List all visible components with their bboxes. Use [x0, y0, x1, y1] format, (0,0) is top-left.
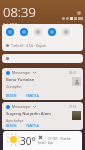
staticText: Sugeng Nurjadin Alam — [6, 111, 52, 117]
button[interactable]: Messenger — [2, 102, 83, 130]
button[interactable]: Quick setting toggle — [62, 28, 70, 36]
button[interactable]: Quick setting toggle — [6, 28, 14, 36]
staticText: YANITLA — [26, 124, 39, 128]
button[interactable]: Settings — [77, 11, 81, 15]
staticText: Banu Yurtalan — [6, 77, 35, 83]
staticText: 30° — [20, 134, 36, 148]
staticText: Messenger — [12, 70, 31, 75]
button[interactable]: YANITLA — [26, 124, 39, 128]
staticText: 08:39 — [3, 3, 36, 21]
staticText: Messenger — [12, 104, 31, 109]
staticText: Sal, 19 Kasım — [3, 22, 26, 24]
staticText: BEĞEN — [6, 94, 17, 98]
button[interactable]: 30° — [3, 131, 82, 150]
staticText: 08:37 — [69, 71, 77, 75]
button[interactable]: BEĞEN — [6, 94, 26, 98]
button[interactable]: Quick setting toggle — [48, 28, 56, 36]
button[interactable]: BEĞEN — [6, 124, 26, 128]
button[interactable]: YANITLA — [26, 94, 39, 98]
staticText: 31°/24° 3 km/sa — [48, 137, 71, 141]
staticText: Turkcell · 4.5G · Kapalı — [11, 43, 46, 48]
staticText: BEĞEN — [6, 124, 17, 128]
button[interactable]: Quick setting toggle — [20, 28, 28, 36]
staticText: Şehirli — [38, 141, 46, 145]
staticText: YANITLA — [26, 94, 39, 98]
staticText: 07:14 — [69, 105, 77, 109]
staticText: Aynı bahçe — [6, 118, 24, 123]
staticText: Açık — [48, 141, 53, 145]
staticText: Günaydın — [6, 84, 22, 89]
button[interactable] — [2, 54, 83, 63]
button[interactable]: Quick setting toggle — [34, 28, 42, 36]
button[interactable]: Messenger — [2, 68, 83, 100]
